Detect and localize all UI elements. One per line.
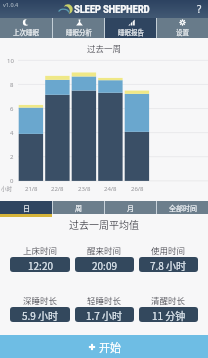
staticText: 深睡时长 — [23, 294, 58, 306]
staticText: 22/8 — [51, 185, 64, 193]
staticText: 过去一周平均值 — [69, 217, 139, 230]
staticText: 6 — [10, 105, 14, 113]
staticText: 24/8 — [104, 185, 117, 193]
staticText: 0 — [10, 177, 14, 185]
staticText: v1.0.4 — [3, 1, 19, 8]
button[interactable]: Help — [190, 0, 208, 18]
staticText: 全部时间 — [169, 203, 197, 213]
button[interactable]: 睡眠报告 — [105, 18, 156, 38]
staticText: 醒来时间 — [87, 244, 122, 256]
button[interactable]: 11 分钟 — [139, 307, 198, 322]
staticText: 上次睡眠 — [13, 27, 39, 36]
staticText: 设置 — [176, 27, 189, 36]
staticText: 11 分钟 — [152, 308, 186, 322]
staticText: 日 — [23, 203, 30, 213]
button[interactable]: 1.7 小时 — [75, 307, 134, 322]
button[interactable]: 5.9 小时 — [10, 307, 70, 322]
staticText: 20:09 — [92, 258, 117, 272]
staticText: 26/8 — [131, 185, 144, 193]
staticText: 12:20 — [28, 258, 53, 272]
button[interactable]: 周 — [53, 201, 104, 214]
button[interactable]: 月 — [105, 201, 156, 214]
staticText: 开始 — [99, 339, 121, 355]
button[interactable]: 20:09 — [75, 257, 134, 272]
staticText: 上床时间 — [23, 244, 58, 256]
button[interactable]: 12:20 — [10, 257, 70, 272]
staticText: 2 — [10, 153, 14, 161]
staticText: 5.9 小时 — [22, 308, 59, 322]
staticText: 周 — [75, 203, 82, 213]
staticText: 清醒时长 — [151, 294, 186, 306]
staticText: 睡眠报告 — [118, 27, 144, 36]
button[interactable]: 日 — [0, 201, 52, 214]
staticText: 过去一周 — [87, 42, 122, 54]
staticText: 1.7 小时 — [86, 308, 123, 322]
staticText: 月 — [127, 203, 134, 213]
staticText: 小时 — [1, 185, 13, 193]
button[interactable]: 睡眠分析 — [53, 18, 104, 38]
staticText: ? — [197, 2, 202, 16]
staticText: SLEEP SHEPHERD — [74, 3, 150, 16]
button[interactable]: 上次睡眠 — [0, 18, 52, 38]
staticText: 7.8 小时 — [150, 258, 187, 272]
staticText: 21/8 — [25, 185, 38, 193]
staticText: 10 — [7, 57, 14, 65]
button[interactable]: 开始 — [0, 335, 208, 358]
button[interactable]: 全部时间 — [157, 201, 208, 214]
staticText: 使用时间 — [151, 244, 186, 256]
button[interactable]: 设置 — [157, 18, 208, 38]
staticText: 轻睡时长 — [87, 294, 122, 306]
staticText: 8 — [10, 81, 14, 89]
staticText: 23/8 — [78, 185, 91, 193]
button[interactable]: 7.8 小时 — [139, 257, 198, 272]
staticText: 睡眠分析 — [66, 27, 92, 36]
staticText: 4 — [10, 129, 14, 137]
